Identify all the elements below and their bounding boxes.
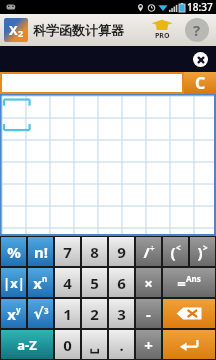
staticText: 2 <box>90 304 99 324</box>
button[interactable]: 2 <box>82 299 107 328</box>
button[interactable]: + <box>136 330 161 359</box>
staticText: 6 <box>117 273 126 293</box>
button[interactable]: x <box>1 299 26 328</box>
button[interactable]: C <box>184 72 216 94</box>
staticText: x <box>7 304 16 324</box>
staticText: × <box>144 273 153 293</box>
staticText: ) <box>197 242 203 262</box>
button[interactable]: Help <box>185 18 209 42</box>
staticText: X <box>9 21 18 39</box>
staticText: |x| <box>3 274 25 292</box>
button[interactable]: a-Z <box>1 330 53 359</box>
staticText: + <box>144 335 153 355</box>
staticText: ? <box>193 20 201 40</box>
staticText: ␣ <box>89 336 100 353</box>
staticText: = <box>177 273 186 293</box>
button[interactable]: 3 <box>109 299 134 328</box>
button[interactable]: . <box>109 330 134 359</box>
button[interactable]: ␣ <box>82 330 107 359</box>
staticText: 9 <box>117 242 126 262</box>
button[interactable]: 8 <box>82 237 107 266</box>
button[interactable]: n! <box>28 237 53 266</box>
button[interactable]: Backspace <box>163 299 215 328</box>
button[interactable]: |x| <box>1 268 26 297</box>
button[interactable]: ( <box>163 237 188 266</box>
staticText: - <box>146 304 151 324</box>
staticText: n <box>42 273 48 284</box>
staticText: 3 <box>117 304 126 324</box>
button[interactable]: 7 <box>55 237 80 266</box>
button[interactable]: - <box>136 299 161 328</box>
staticText: a-Z <box>17 336 37 354</box>
button[interactable]: 6 <box>109 268 134 297</box>
button[interactable]: 0 <box>55 330 80 359</box>
button[interactable]: × <box>136 268 161 297</box>
staticText: 0 <box>63 335 72 355</box>
staticText: > <box>203 242 208 253</box>
button[interactable]: % <box>1 237 26 266</box>
staticText: 7 <box>63 242 72 262</box>
staticText: 1 <box>63 304 72 324</box>
staticText: √ <box>33 305 44 322</box>
button[interactable]: √ <box>28 299 53 328</box>
staticText: Ans <box>186 273 201 284</box>
staticText: ÷ <box>150 242 155 253</box>
staticText: x <box>33 273 42 293</box>
staticText: ( <box>170 242 176 262</box>
button[interactable]: = <box>163 268 215 297</box>
button[interactable]: 1 <box>55 299 80 328</box>
button[interactable]: 9 <box>109 237 134 266</box>
staticText: 科学函数计算器 <box>33 22 124 38</box>
staticText: 5 <box>90 273 99 293</box>
button[interactable]: 4 <box>55 268 80 297</box>
staticText: n! <box>34 242 48 262</box>
staticText: < <box>176 242 181 253</box>
button[interactable]: ) <box>190 237 215 266</box>
staticText: 18:37 <box>187 0 213 14</box>
button[interactable]: Enter <box>163 330 215 359</box>
button[interactable]: 5 <box>82 268 107 297</box>
staticText: C <box>195 72 206 94</box>
button[interactable]: Upgrade to PRO <box>145 14 179 46</box>
button[interactable]: x <box>28 268 53 297</box>
button[interactable]: / <box>136 237 161 266</box>
staticText: 3 <box>44 305 49 316</box>
staticText: 8 <box>90 242 99 262</box>
button[interactable]: Close <box>193 52 208 67</box>
staticText: % <box>7 242 21 262</box>
staticText: PRO <box>155 31 170 41</box>
staticText: 4 <box>63 273 72 293</box>
staticText: / <box>143 242 150 262</box>
staticText: . <box>119 335 124 355</box>
staticText: 2 <box>18 27 24 39</box>
staticText: y <box>16 304 21 315</box>
